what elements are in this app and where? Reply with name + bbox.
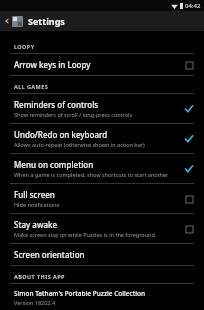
button[interactable]: Menu on completion toggle [184, 164, 194, 174]
button[interactable]: Undo/Redo on keyboard toggle [184, 134, 194, 144]
staticText: Settings [28, 15, 65, 27]
staticText: Make screen stay on while Puzzles is in … [14, 231, 155, 238]
staticText: Menu on completion [14, 159, 94, 170]
button[interactable]: Arrow keys in Loopy [0, 54, 204, 75]
button[interactable]: Full screen [0, 184, 204, 213]
button[interactable]: Stay awake toggle [184, 224, 194, 234]
staticText: Undo/Redo on keyboard [14, 129, 108, 140]
button[interactable]: Reminders of controls [0, 94, 204, 123]
button[interactable]: Stay awake [0, 214, 204, 243]
staticText: Reminders of controls [14, 99, 99, 110]
staticText: ABOUT THIS APP [14, 273, 65, 280]
staticText: 04:42 [185, 2, 201, 10]
staticText: LOOPY [14, 43, 35, 50]
button[interactable]: Menu on completion [0, 154, 204, 183]
staticText: Hide notifications [14, 201, 60, 208]
staticText: Full screen [14, 189, 55, 200]
button[interactable]: Undo/Redo on keyboard [0, 124, 204, 153]
staticText: ALL GAMES [14, 83, 49, 90]
button[interactable]: Simon Tatham's Portable Puzzle Collectio… [0, 284, 204, 310]
staticText: When a game is completed, show shortcuts… [14, 171, 169, 178]
staticText: Allows auto-repeat (otherwise shown in a… [14, 141, 145, 148]
button[interactable]: Screen orientation [0, 244, 204, 265]
button[interactable]: Full screen toggle [184, 194, 194, 204]
staticText: Simon Tatham's Portable Puzzle Collectio… [14, 289, 145, 298]
button[interactable]: Arrow keys in Loopy toggle [184, 60, 194, 70]
staticText: Show reminders of scroll / long-press co… [14, 111, 133, 118]
staticText: Version 18202.4 [14, 299, 56, 305]
staticText: Stay awake [14, 219, 58, 230]
staticText: Screen orientation [14, 249, 85, 260]
staticText: Arrow keys in Loopy [14, 59, 91, 70]
button[interactable]: Navigate up [0, 11, 204, 31]
button[interactable]: Reminders of controls toggle [184, 104, 194, 114]
